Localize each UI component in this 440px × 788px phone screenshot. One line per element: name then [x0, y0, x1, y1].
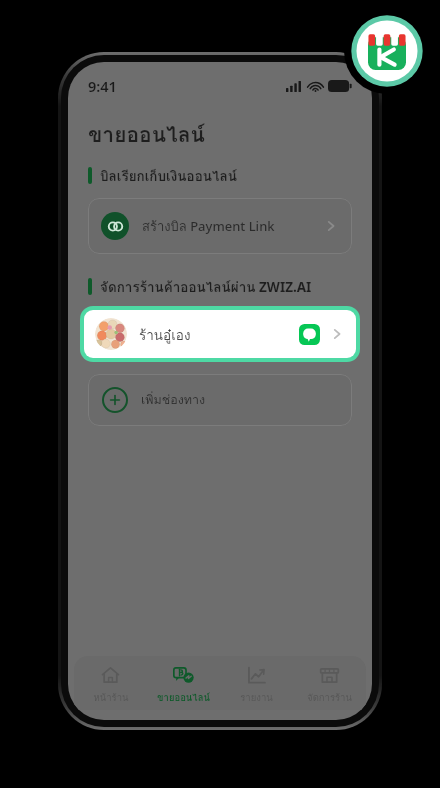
- button[interactable]: ร้านอู๋เอง: [84, 310, 356, 358]
- staticText: จัดการร้าน: [307, 690, 352, 705]
- staticText: จัดการร้านค้าออนไลน์ผ่าน ZWIZ.AI: [100, 276, 312, 297]
- staticText: ร้านอู๋เอง: [139, 324, 191, 345]
- staticText: เพิ่มช่องทาง: [141, 390, 206, 410]
- button[interactable]: ขายออนไลน์: [147, 656, 220, 710]
- staticText: บิลเรียกเก็บเงินออนไลน์: [100, 165, 237, 186]
- button[interactable]: K SHOP: [344, 8, 430, 94]
- staticText: หน้าร้าน: [93, 690, 129, 705]
- staticText: ขายออนไลน์: [157, 690, 210, 705]
- staticText: สร้างบิล Payment Link: [142, 216, 275, 237]
- button[interactable]: จัดการร้าน: [293, 656, 366, 710]
- button[interactable]: สร้างบิล Payment Link: [88, 198, 352, 254]
- button[interactable]: เพิ่มช่องทาง: [88, 374, 352, 426]
- button[interactable]: หน้าร้าน: [74, 656, 147, 710]
- staticText: 9:41: [88, 76, 117, 96]
- staticText: ขายออนไลน์: [88, 118, 205, 151]
- staticText: รายงาน: [240, 690, 273, 705]
